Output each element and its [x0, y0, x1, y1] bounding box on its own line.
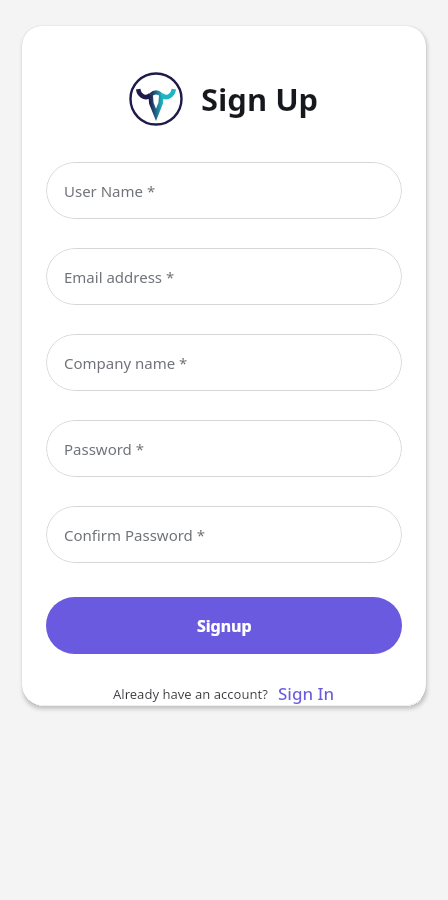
button[interactable]: Signup	[46, 597, 402, 654]
other: App logo	[129, 72, 183, 126]
button[interactable]: Company name *	[46, 334, 402, 391]
button[interactable]: Password *	[46, 420, 402, 477]
staticText: Confirm Password *	[64, 525, 205, 545]
staticText: Signup	[197, 615, 252, 637]
staticText: User Name *	[64, 181, 156, 201]
button[interactable]: User Name *	[46, 162, 402, 219]
staticText: Sign Up	[201, 78, 319, 120]
staticText: Already have an account?	[113, 685, 268, 703]
staticText: Email address *	[64, 267, 175, 287]
button[interactable]: Email address *	[46, 248, 402, 305]
button[interactable]: Confirm Password *	[46, 506, 402, 563]
staticText: Sign In	[278, 682, 335, 705]
staticText: Company name *	[64, 353, 188, 373]
button[interactable]: Sign In	[278, 682, 335, 705]
staticText: Password *	[64, 439, 145, 459]
